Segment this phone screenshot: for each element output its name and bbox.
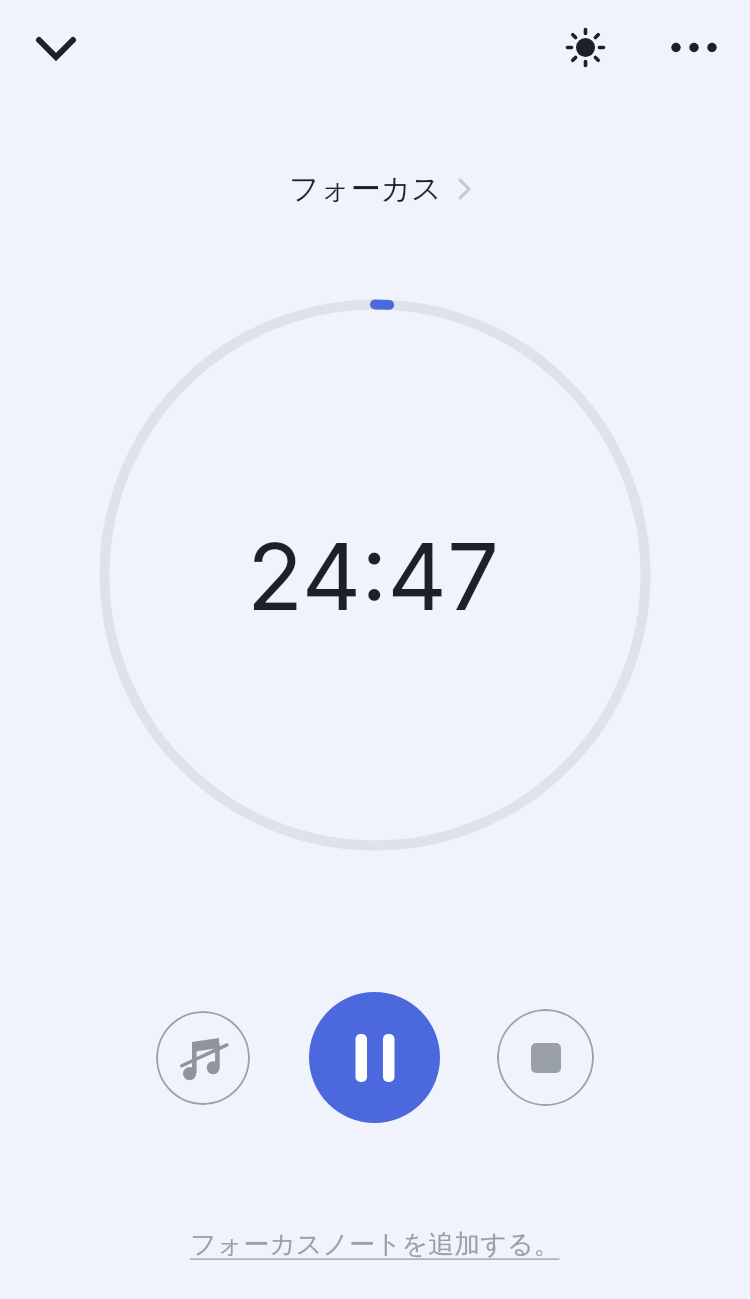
button[interactable] [662,26,722,70]
staticText: フォーカスノートを追加する。 [190,1228,560,1261]
button[interactable] [497,1009,594,1106]
staticText: 24:47 [247,521,500,632]
button[interactable] [156,1011,250,1105]
button[interactable] [559,21,612,74]
button[interactable] [28,20,84,76]
button[interactable]: フォーカス [289,170,472,208]
button[interactable] [309,992,440,1123]
button[interactable]: フォーカスノートを追加する。 [190,1228,560,1261]
staticText: フォーカス [289,170,442,208]
